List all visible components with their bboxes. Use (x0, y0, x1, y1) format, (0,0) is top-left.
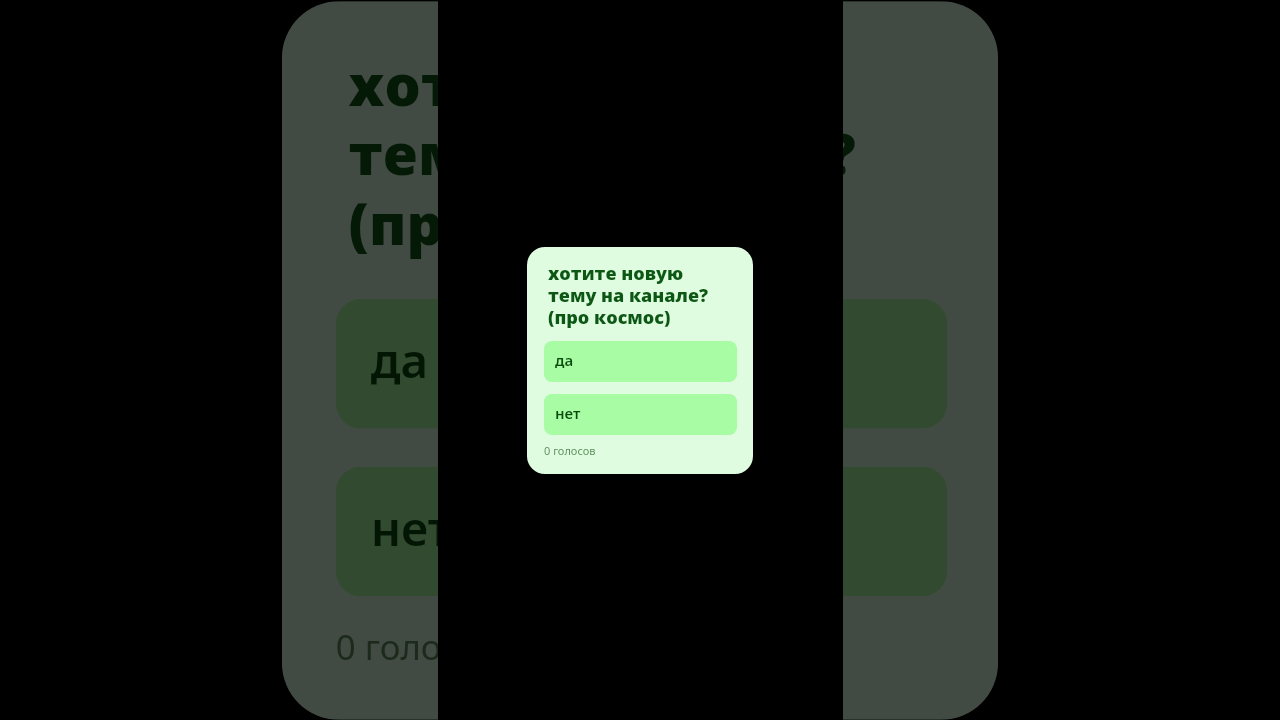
button[interactable]: нет (336, 467, 947, 596)
button[interactable]: нет (544, 394, 737, 435)
button[interactable]: да (336, 299, 947, 429)
staticText: 0 голосов (336, 622, 501, 669)
staticText: хотите новую тему на канале? (про космос… (348, 52, 859, 261)
staticText: да (371, 327, 431, 391)
staticText: 0 голосов (544, 443, 596, 458)
button[interactable]: да (544, 341, 737, 382)
staticText: нет (371, 495, 453, 558)
staticText: да (555, 350, 574, 370)
staticText: нет (555, 403, 581, 423)
staticText: хотите новую тему на канале? (про космос… (548, 263, 709, 329)
